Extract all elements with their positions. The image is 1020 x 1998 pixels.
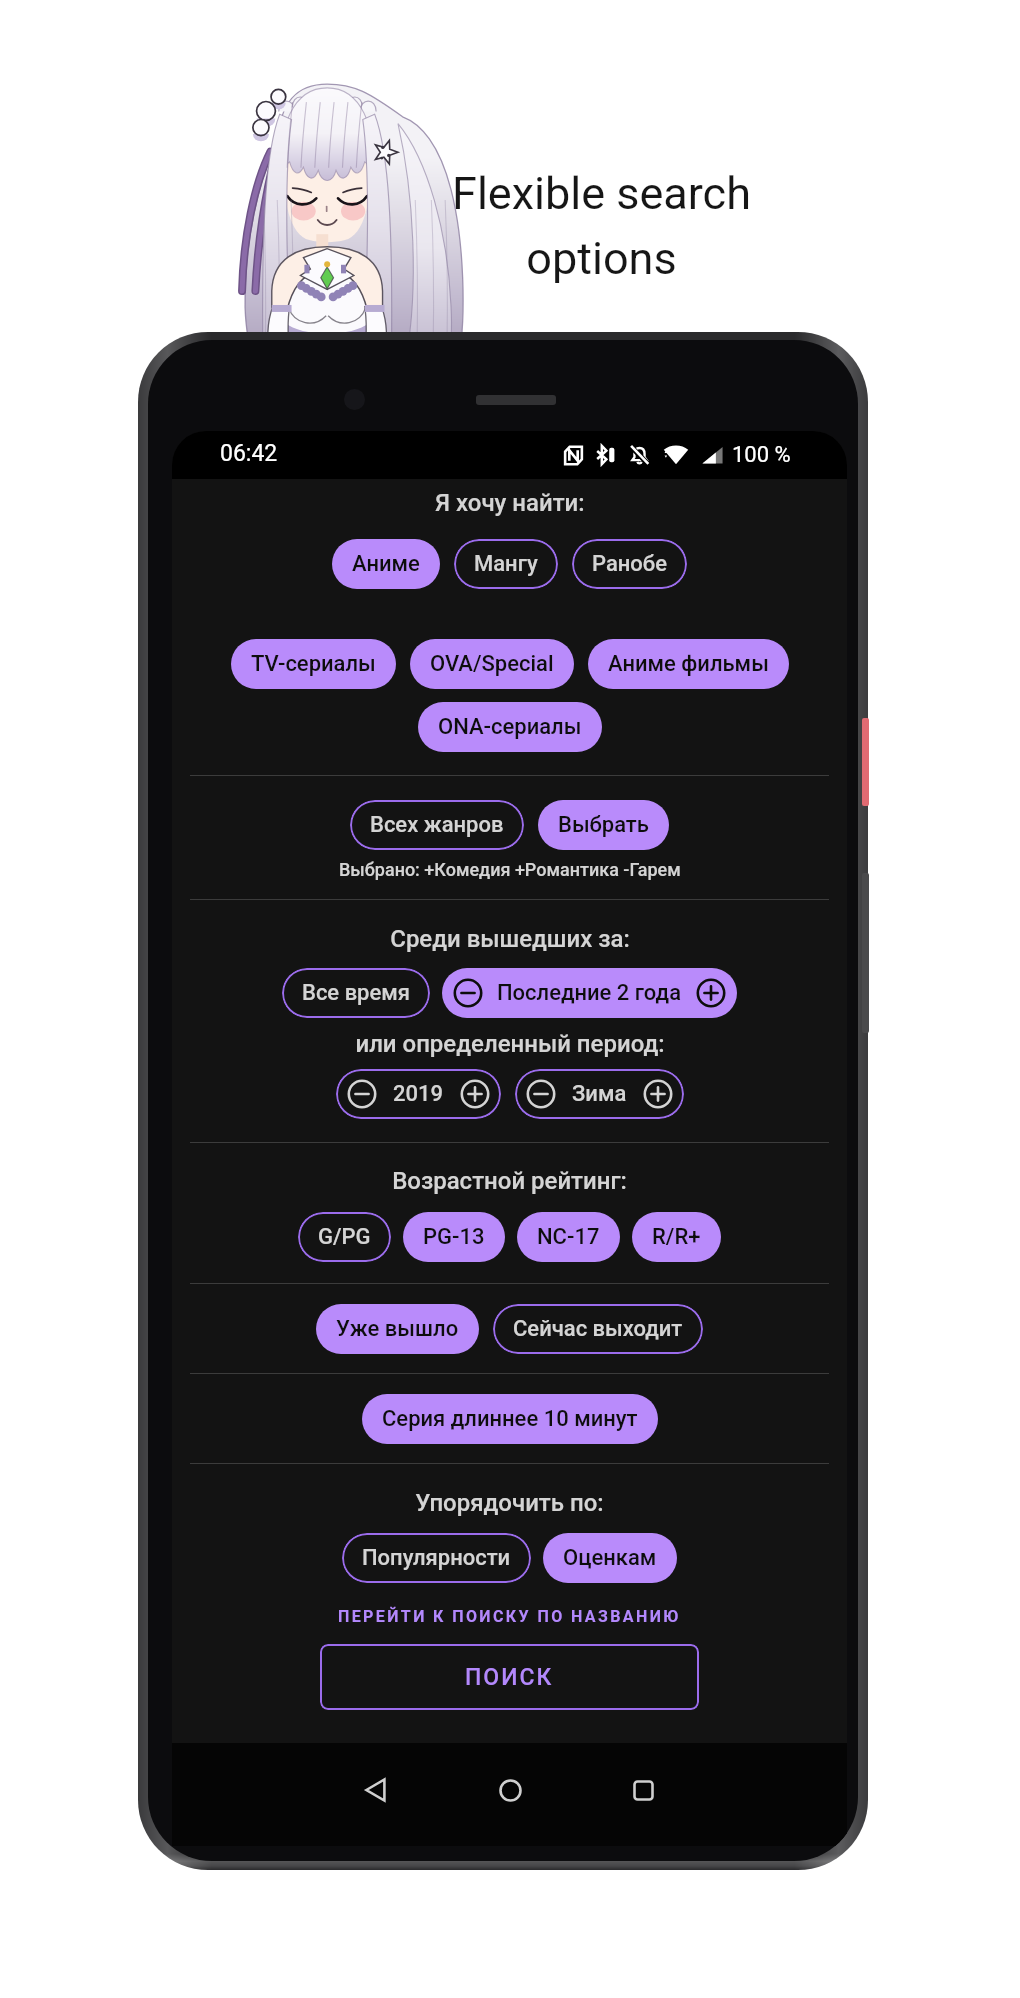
button[interactable]: G/PG xyxy=(298,1212,391,1262)
staticText: 06:42 xyxy=(220,440,278,467)
staticText: Популярности xyxy=(362,1545,511,1571)
button[interactable]: Выбрать xyxy=(538,800,669,850)
staticText: Ранобе xyxy=(592,551,667,577)
staticText: Я хочу найти: xyxy=(435,489,585,517)
button[interactable]: OVA/Special xyxy=(410,639,574,689)
staticText: Все время xyxy=(302,980,410,1006)
button[interactable]: Всех жанров xyxy=(350,800,524,850)
staticText: Flexible search options xyxy=(452,167,751,285)
staticText: Мангу xyxy=(474,551,538,577)
button[interactable]: PG-13 xyxy=(403,1212,505,1262)
button[interactable]: Оценкам xyxy=(543,1533,677,1583)
button[interactable]: ONA-сериалы xyxy=(418,702,602,752)
button[interactable]: Recents xyxy=(614,1761,672,1819)
staticText: OVA/Special xyxy=(430,651,554,677)
button[interactable]: Сейчас выходит xyxy=(493,1304,703,1354)
staticText: Выбрано: +Комедия +Романтика -Гарем xyxy=(339,859,681,880)
staticText: TV-сериалы xyxy=(251,651,376,677)
staticText: Сейчас выходит xyxy=(513,1316,683,1342)
button[interactable]: R/R+ xyxy=(632,1212,721,1262)
button[interactable]: Зима xyxy=(515,1069,684,1119)
button[interactable]: Уже вышло xyxy=(316,1304,479,1354)
staticText: R/R+ xyxy=(652,1224,701,1250)
staticText: Уже вышло xyxy=(336,1316,459,1342)
staticText: или определенный период: xyxy=(355,1030,665,1058)
staticText: 2019 xyxy=(393,1081,444,1107)
staticText: NC-17 xyxy=(537,1224,600,1250)
staticText: Всех жанров xyxy=(370,812,504,838)
staticText: ПОИСК xyxy=(465,1664,554,1691)
button[interactable]: Home xyxy=(481,1761,539,1819)
button[interactable]: ПЕРЕЙТИ К ПОИСКУ ПО НАЗВАНИЮ xyxy=(330,1603,689,1630)
button[interactable]: Аниме фильмы xyxy=(588,639,789,689)
staticText: Аниме xyxy=(352,551,420,577)
staticText: Последние 2 года xyxy=(497,980,682,1006)
button[interactable]: ПОИСК xyxy=(320,1644,699,1710)
button[interactable]: Серия длиннее 10 минут xyxy=(362,1394,658,1444)
button[interactable]: NC-17 xyxy=(517,1212,620,1262)
button[interactable]: Back xyxy=(347,1761,405,1819)
button[interactable]: 2019 xyxy=(336,1069,501,1119)
staticText: PG-13 xyxy=(423,1224,485,1250)
button[interactable]: Аниме xyxy=(332,539,440,589)
button[interactable]: Популярности xyxy=(342,1533,531,1583)
button[interactable]: Все время xyxy=(282,968,430,1018)
staticText: ПЕРЕЙТИ К ПОИСКУ ПО НАЗВАНИЮ xyxy=(338,1607,681,1626)
staticText: 100 % xyxy=(732,442,791,468)
button[interactable]: Последние 2 года xyxy=(442,968,737,1018)
staticText: Выбрать xyxy=(558,812,649,838)
staticText: Среди вышедших за: xyxy=(390,925,630,953)
staticText: Упорядочить по: xyxy=(415,1489,604,1517)
staticText: Зима xyxy=(572,1081,627,1107)
staticText: ONA-сериалы xyxy=(438,714,582,740)
staticText: Возрастной рейтинг: xyxy=(392,1167,627,1195)
button[interactable]: TV-сериалы xyxy=(231,639,396,689)
button[interactable]: Ранобе xyxy=(572,539,687,589)
staticText: Серия длиннее 10 минут xyxy=(382,1406,638,1432)
staticText: G/PG xyxy=(318,1224,371,1250)
button[interactable]: Мангу xyxy=(454,539,558,589)
staticText: Оценкам xyxy=(563,1545,657,1571)
staticText: Аниме фильмы xyxy=(608,651,769,677)
